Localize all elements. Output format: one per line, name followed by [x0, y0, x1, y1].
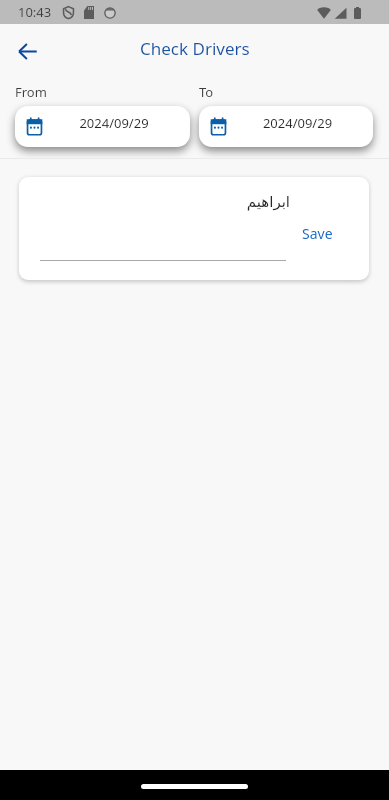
staticText: 2024/09/29	[43, 114, 185, 132]
staticText: ابراهيم	[40, 193, 290, 210]
button[interactable]: Save	[302, 224, 333, 243]
staticText: Check Drivers	[140, 37, 250, 60]
button[interactable]: ابراهيم	[19, 177, 369, 280]
staticText: 2024/09/29	[227, 114, 368, 132]
button[interactable]: Back	[9, 33, 45, 69]
button[interactable]: 2024/09/29	[199, 106, 373, 147]
button[interactable]: 2024/09/29	[15, 106, 190, 147]
staticText: 10:43	[18, 3, 52, 21]
staticText: To	[199, 83, 214, 101]
staticText: From	[15, 83, 47, 101]
